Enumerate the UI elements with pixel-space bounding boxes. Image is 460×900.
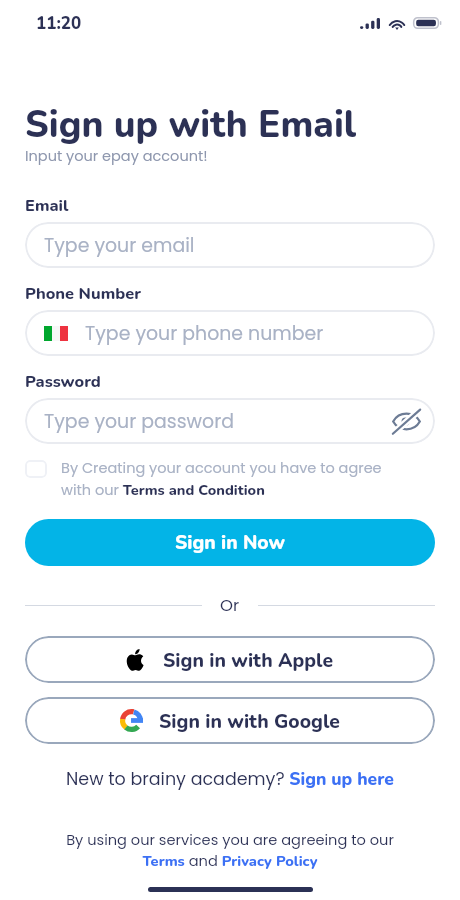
staticText: Or — [220, 594, 240, 617]
staticText: Type your password — [44, 408, 234, 434]
staticText: Input your epay account! — [25, 146, 208, 166]
staticText: Type your phone number — [85, 320, 324, 346]
staticText: Sign in Now — [175, 530, 285, 556]
staticText: Password — [25, 370, 101, 392]
button[interactable]: Show password — [390, 405, 422, 437]
staticText: Phone Number — [25, 282, 141, 304]
staticText: By using our services you are agreeing t… — [57, 830, 403, 871]
button[interactable]: Type your phone number — [25, 310, 435, 356]
button[interactable]: Type your email — [25, 222, 435, 268]
button[interactable]: Sign in with Apple — [25, 636, 435, 683]
staticText: Email — [25, 194, 69, 216]
staticText: By Creating your account you have to agr… — [61, 458, 391, 500]
staticText: Sign up with Email — [25, 100, 357, 150]
button[interactable]: By Creating your account you have to agr… — [25, 458, 435, 500]
staticText: Type your email — [44, 232, 195, 258]
button[interactable]: Sign in Now — [25, 519, 435, 566]
staticText: Sign in with Google — [159, 708, 340, 734]
button[interactable]: Type your password — [25, 398, 435, 444]
staticText: 11:20 — [36, 12, 82, 35]
button[interactable]: New to brainy academy? Sign up here — [66, 767, 394, 792]
button[interactable]: Sign in with Google — [25, 697, 435, 744]
staticText: Sign in with Apple — [163, 647, 334, 673]
staticText: New to brainy academy? Sign up here — [66, 767, 394, 792]
